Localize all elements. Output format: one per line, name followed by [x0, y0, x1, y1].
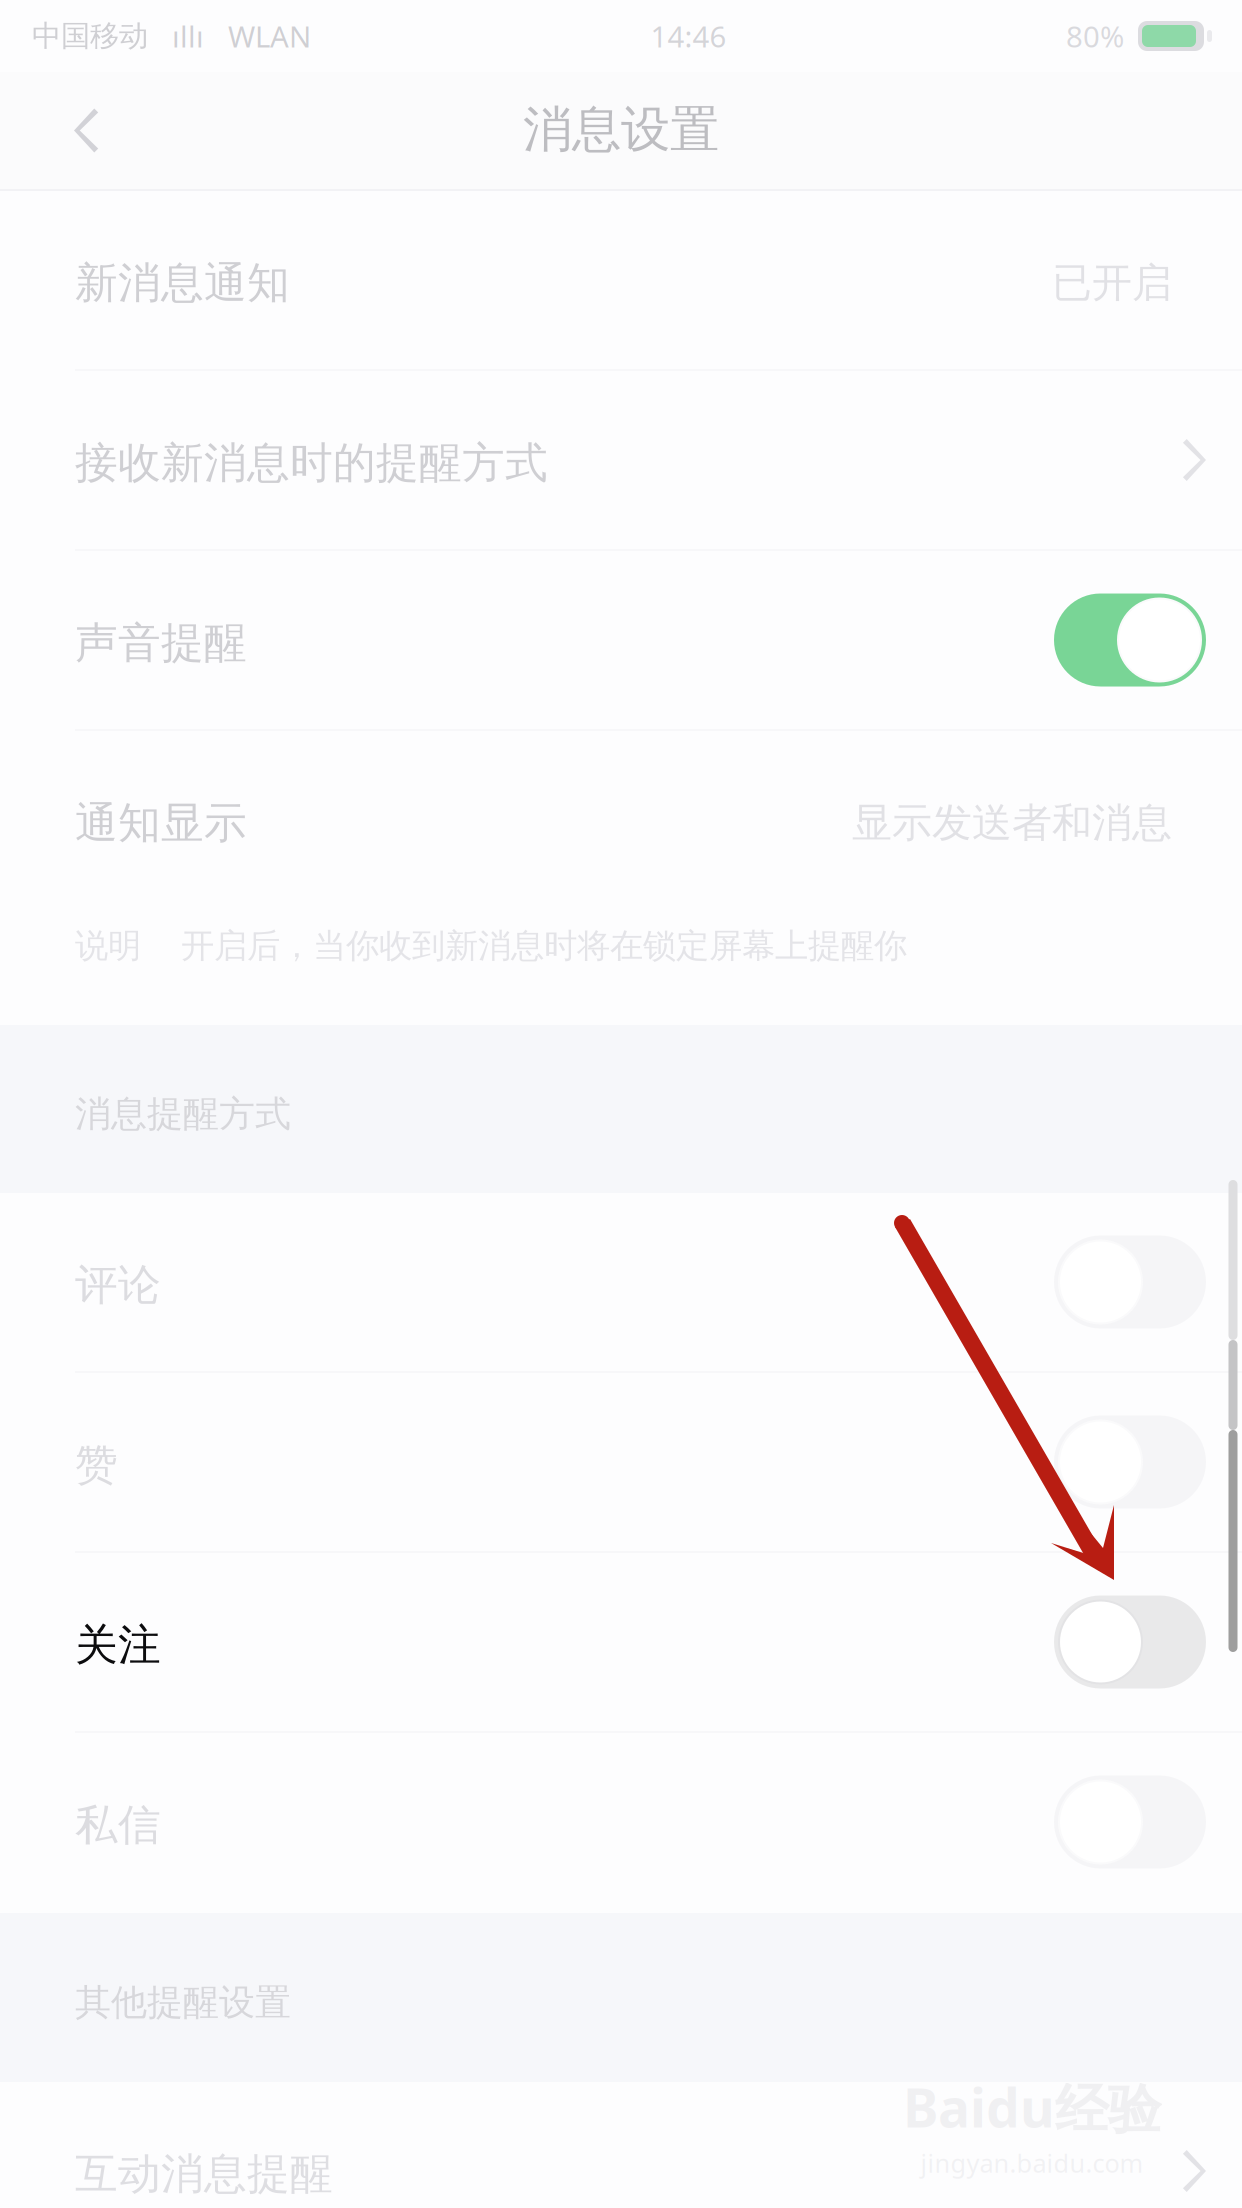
staticText: 中国移动 — [32, 18, 148, 54]
staticText: 赞 — [75, 1439, 118, 1491]
staticText: 评论 — [75, 1259, 161, 1311]
staticText: 声音提醒 — [75, 617, 247, 669]
button[interactable]: 接收新消息时的提醒方式 — [0, 371, 1242, 551]
staticText: 显示发送者和消息 — [852, 798, 1172, 847]
button[interactable]: 关注 — [0, 1553, 1242, 1733]
button[interactable]: 通知显示 — [0, 731, 1242, 911]
button[interactable]: 赞 — [0, 1373, 1242, 1553]
staticText: 消息提醒方式 — [75, 1092, 291, 1136]
button[interactable]: 评论 — [0, 1193, 1242, 1373]
staticText: 新消息通知 — [75, 257, 290, 309]
staticText: 其他提醒设置 — [75, 1980, 291, 2025]
staticText: 私信 — [75, 1799, 161, 1851]
staticText: 消息设置 — [523, 99, 719, 160]
staticText: jingyan.baidu.com — [920, 2146, 1143, 2180]
staticText: 接收新消息时的提醒方式 — [75, 437, 548, 489]
staticText: 80% — [1066, 16, 1124, 55]
staticText: 关注 — [75, 1619, 161, 1671]
button[interactable]: 新消息通知 — [0, 191, 1242, 371]
staticText: 说明 — [75, 925, 141, 966]
button[interactable]: 返回 Back — [0, 72, 200, 189]
button[interactable]: 声音提醒 — [0, 551, 1242, 731]
staticText: 通知显示 — [75, 797, 247, 849]
staticText: Baidu经验 — [903, 2071, 1161, 2143]
staticText: ıllı — [148, 16, 204, 55]
staticText: WLAN — [204, 16, 311, 55]
staticText: 开启后，当你收到新消息时将在锁定屏幕上提醒你 — [141, 925, 907, 966]
staticText: 14:46 — [650, 16, 726, 55]
button[interactable]: 互动消息提醒 — [0, 2082, 1242, 2208]
staticText: 已开启 — [1052, 258, 1172, 307]
staticText: 互动消息提醒 — [75, 2148, 333, 2200]
